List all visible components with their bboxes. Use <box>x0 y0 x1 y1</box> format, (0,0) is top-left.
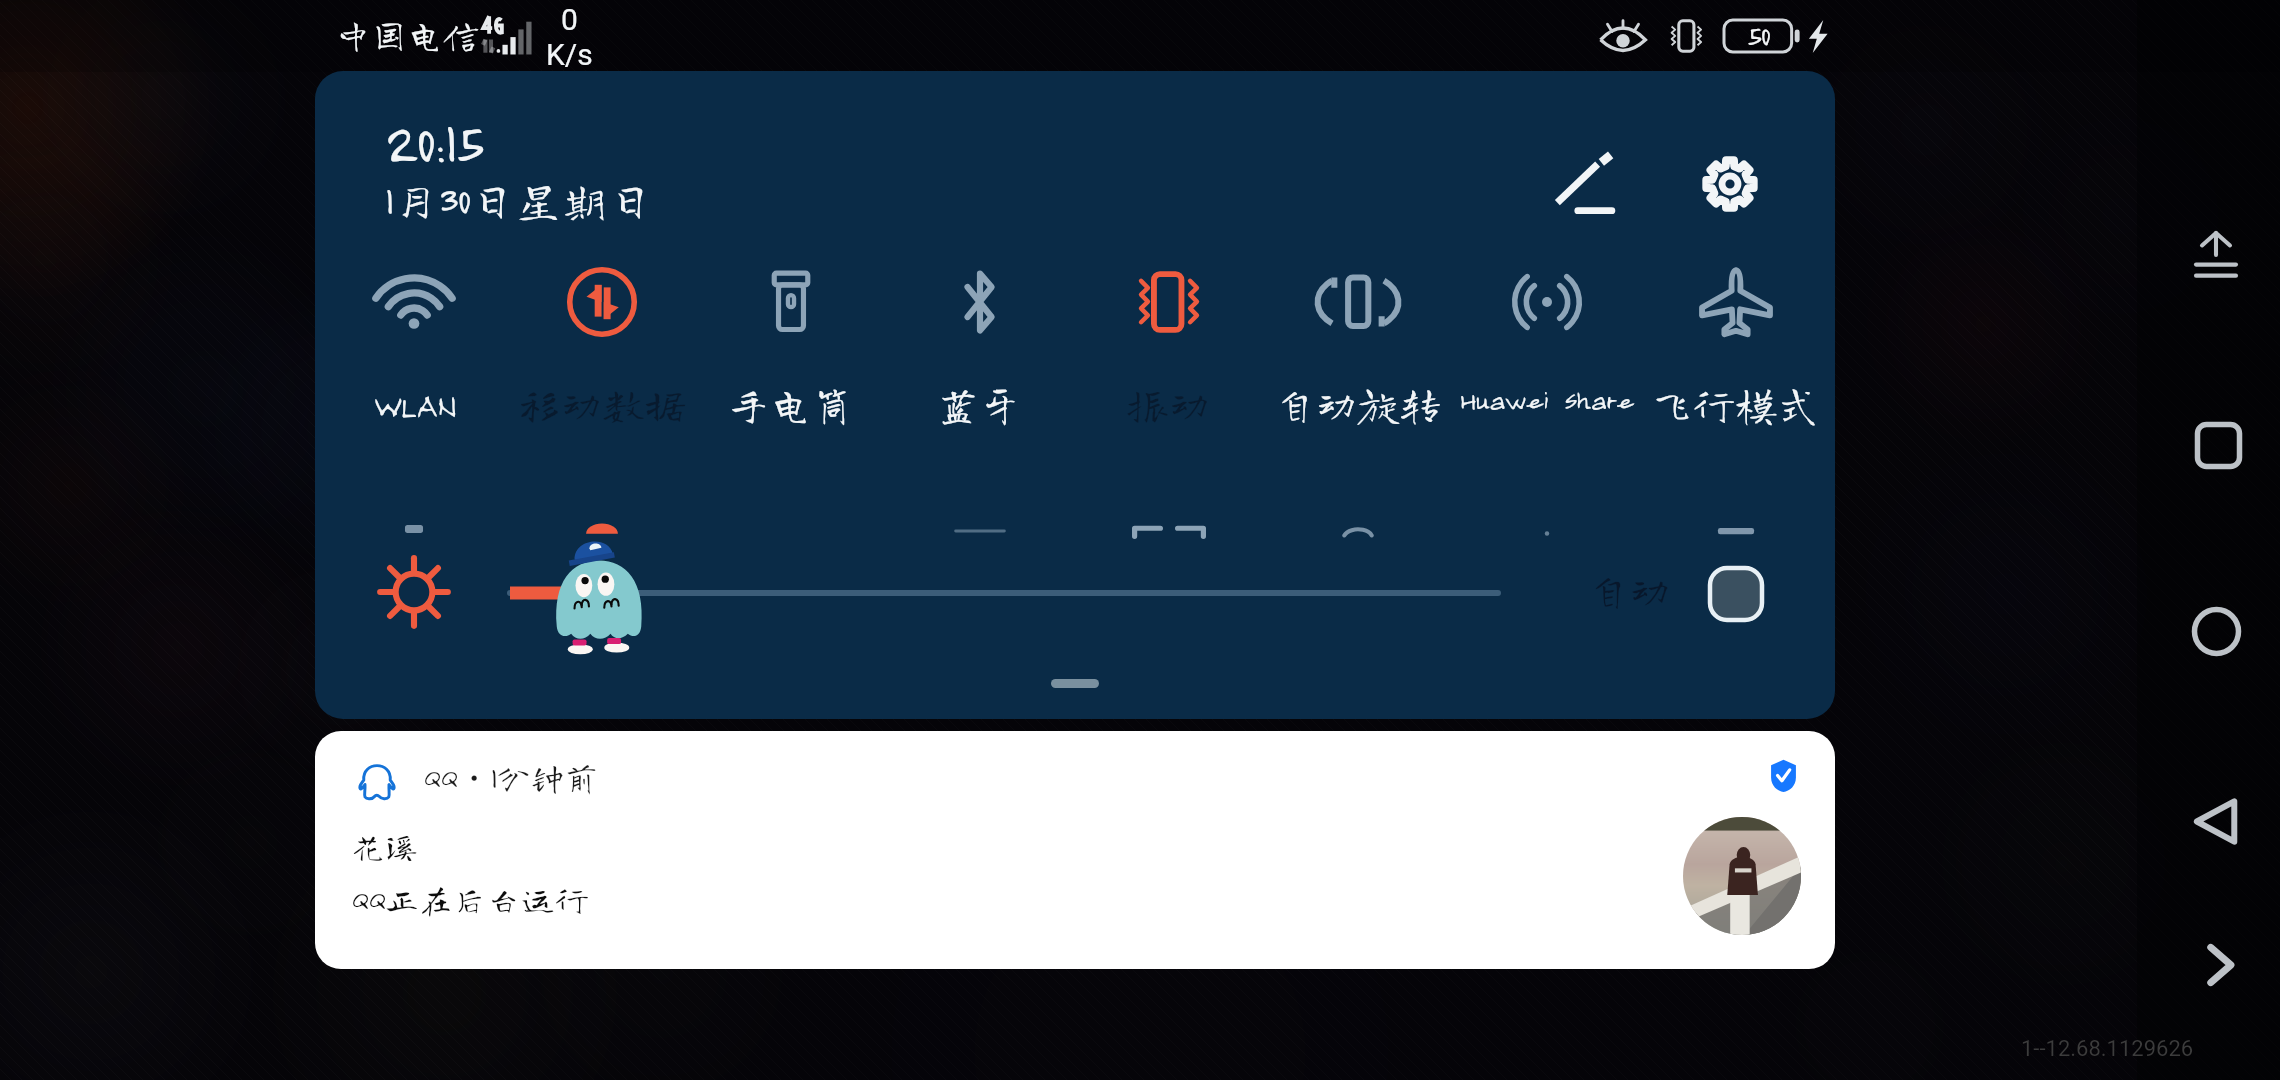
button[interactable]: 自动旋转 <box>1263 259 1452 425</box>
staticText: 振动 <box>1126 383 1211 425</box>
staticText: 自动旋转 <box>1273 383 1442 425</box>
staticText: 手电筒 <box>727 383 854 425</box>
staticText: 自动 <box>1587 569 1672 611</box>
button[interactable]: Back <box>2169 773 2265 869</box>
staticText: 0 <box>561 2 578 37</box>
staticText: QQ正在后台运行 <box>351 882 589 916</box>
staticText: 1月30日星期日 <box>385 177 654 223</box>
staticText: Huawei Share <box>1459 383 1634 415</box>
staticText: QQ・1分钟前 <box>423 757 599 800</box>
staticText: 蓝牙 <box>937 383 1022 425</box>
button[interactable]: Expand panel <box>2168 207 2264 303</box>
staticText: 1--12.68.1129626 <box>2021 1036 2194 1062</box>
button[interactable]: 移动数据 <box>508 259 696 425</box>
button[interactable]: Huawei Share <box>1452 259 1641 415</box>
staticText: 花溪 <box>351 829 419 863</box>
staticText: 移动数据 <box>518 383 687 425</box>
staticText: 50 <box>1747 18 1770 52</box>
staticText: 20:15 <box>385 109 482 175</box>
button[interactable]: 振动 <box>1074 259 1263 425</box>
button[interactable]: 飞行模式 <box>1641 259 1830 425</box>
staticText: K/s <box>546 37 593 72</box>
button[interactable]: More <box>2172 917 2268 1013</box>
button[interactable]: Settings <box>1675 129 1785 239</box>
staticText: 飞行模式 <box>1651 383 1820 425</box>
button[interactable]: QQ・1分钟前 <box>315 731 1835 969</box>
button[interactable]: WLAN <box>320 259 508 425</box>
button[interactable]: Verified notification <box>1759 751 1807 799</box>
button[interactable]: Auto brightness <box>1708 566 1764 622</box>
staticText: 中国电信 <box>335 16 480 52</box>
button[interactable]: Edit quick settings <box>1529 129 1639 239</box>
button[interactable]: Home <box>2168 583 2264 679</box>
button[interactable]: Recent apps <box>2170 397 2266 493</box>
button[interactable]: 手电筒 <box>696 259 885 425</box>
staticText: WLAN <box>374 383 455 425</box>
button[interactable]: 蓝牙 <box>885 259 1074 425</box>
